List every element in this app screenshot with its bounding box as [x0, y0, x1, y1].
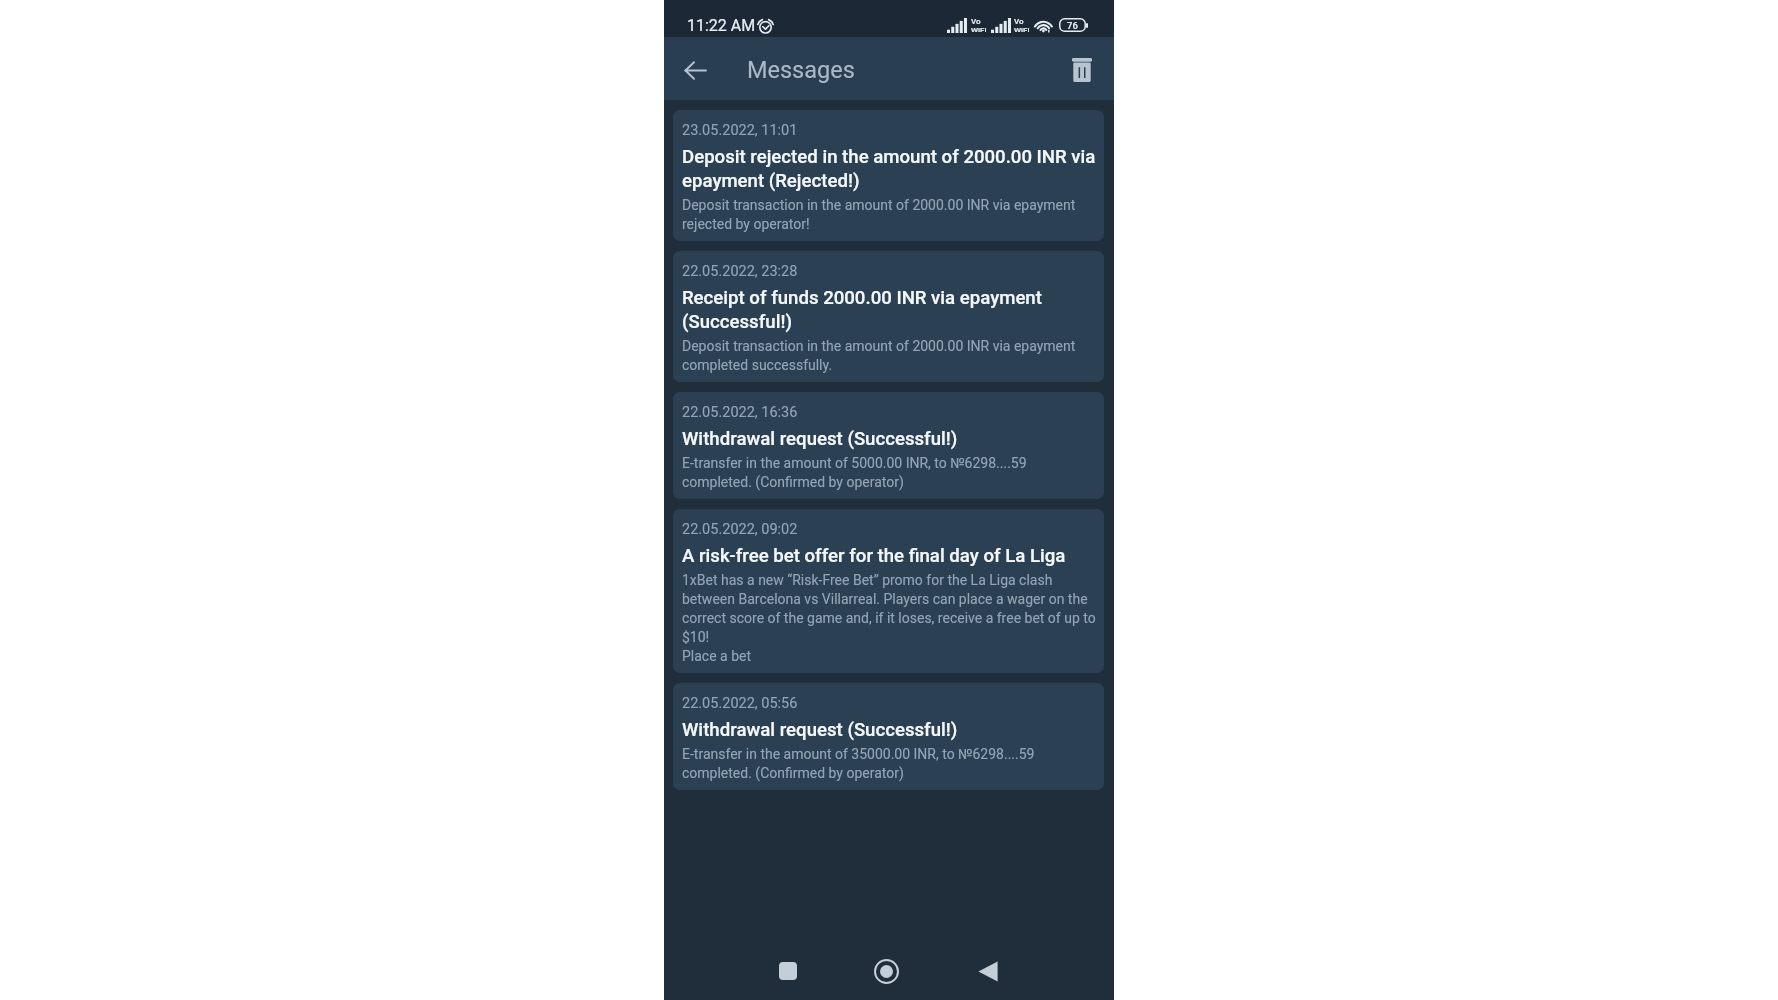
staticText: 76 [1067, 20, 1078, 31]
staticText: Receipt of funds 2000.00 INR via epaymen… [682, 285, 1096, 333]
staticText: 22.05.2022, 05:56 [682, 693, 798, 712]
staticText: Withdrawal request (Successful!) [682, 717, 958, 741]
button[interactable]: Home [862, 947, 910, 995]
staticText: 22.05.2022, 16:36 [682, 402, 798, 421]
staticText: Vo [971, 17, 981, 26]
button[interactable]: 23.05.2022, 11:01 [673, 110, 1104, 241]
staticText: WiFi [971, 26, 987, 32]
staticText: 11:22 AM [687, 16, 756, 35]
staticText: Deposit rejected in the amount of 2000.0… [682, 144, 1096, 192]
staticText: 22.05.2022, 23:28 [682, 261, 798, 280]
button[interactable]: Delete all messages [1059, 42, 1105, 98]
button[interactable]: 22.05.2022, 09:02 [673, 509, 1104, 673]
staticText: A risk-free bet offer for the final day … [682, 543, 1066, 567]
staticText: Place a bet [682, 646, 752, 665]
staticText: 1xBet has a new “Risk-Free Bet” promo fo… [682, 570, 1096, 646]
staticText: Messages [747, 56, 855, 84]
button[interactable]: Back [964, 947, 1012, 995]
button[interactable]: 22.05.2022, 05:56 [673, 683, 1104, 790]
staticText: Vo [1014, 17, 1024, 26]
staticText: Deposit transaction in the amount of 200… [682, 195, 1096, 233]
button[interactable]: Recent apps [764, 947, 812, 995]
staticText: WiFi [1014, 26, 1030, 32]
staticText: Deposit transaction in the amount of 200… [682, 336, 1096, 374]
button[interactable]: 22.05.2022, 23:28 [673, 251, 1104, 382]
staticText: 23.05.2022, 11:01 [682, 120, 798, 139]
staticText: Withdrawal request (Successful!) [682, 426, 958, 450]
staticText: E-transfer in the amount of 35000.00 INR… [682, 744, 1035, 782]
staticText: 22.05.2022, 09:02 [682, 519, 798, 538]
staticText: E-transfer in the amount of 5000.00 INR,… [682, 453, 1027, 491]
button[interactable]: Back [672, 42, 719, 98]
button[interactable]: 22.05.2022, 16:36 [673, 392, 1104, 499]
